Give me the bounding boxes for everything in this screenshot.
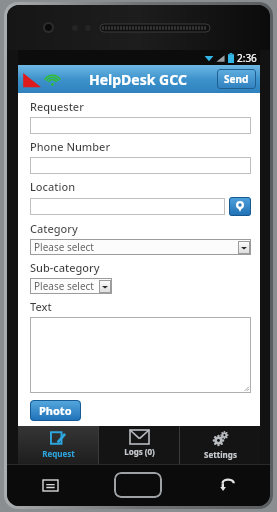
staticText: Request <box>42 448 75 459</box>
button[interactable]: Logs (0) <box>99 426 179 464</box>
staticText: Logs (0) <box>124 446 155 457</box>
button[interactable]: Request <box>18 426 98 464</box>
staticText: Please select <box>34 240 94 254</box>
button[interactable]: Photo <box>30 400 81 421</box>
button[interactable] <box>30 117 251 134</box>
button[interactable] <box>30 157 251 174</box>
button[interactable]: Please select <box>30 239 251 255</box>
button[interactable] <box>30 198 225 215</box>
button[interactable]: Please select <box>30 278 112 294</box>
staticText: Photo <box>39 403 72 418</box>
button[interactable]: Pick location on map <box>229 197 251 216</box>
staticText: Text <box>30 299 52 314</box>
button[interactable]: Recent apps <box>37 472 63 498</box>
staticText: Sub-category <box>30 260 100 275</box>
staticText: Requester <box>30 99 84 114</box>
staticText: 2:36 <box>237 51 257 65</box>
button[interactable]: Send <box>217 69 256 89</box>
staticText: Phone Number <box>30 139 111 154</box>
button[interactable]: Back <box>214 472 240 498</box>
staticText: HelpDesk GCC <box>89 70 187 89</box>
staticText: Location <box>30 179 76 194</box>
button[interactable] <box>30 317 251 393</box>
button[interactable]: Home <box>114 472 162 498</box>
button[interactable]: Settings <box>180 426 260 464</box>
staticText: Please select <box>34 279 94 293</box>
staticText: Send <box>224 72 249 86</box>
staticText: Settings <box>204 449 237 460</box>
staticText: Category <box>30 221 78 236</box>
